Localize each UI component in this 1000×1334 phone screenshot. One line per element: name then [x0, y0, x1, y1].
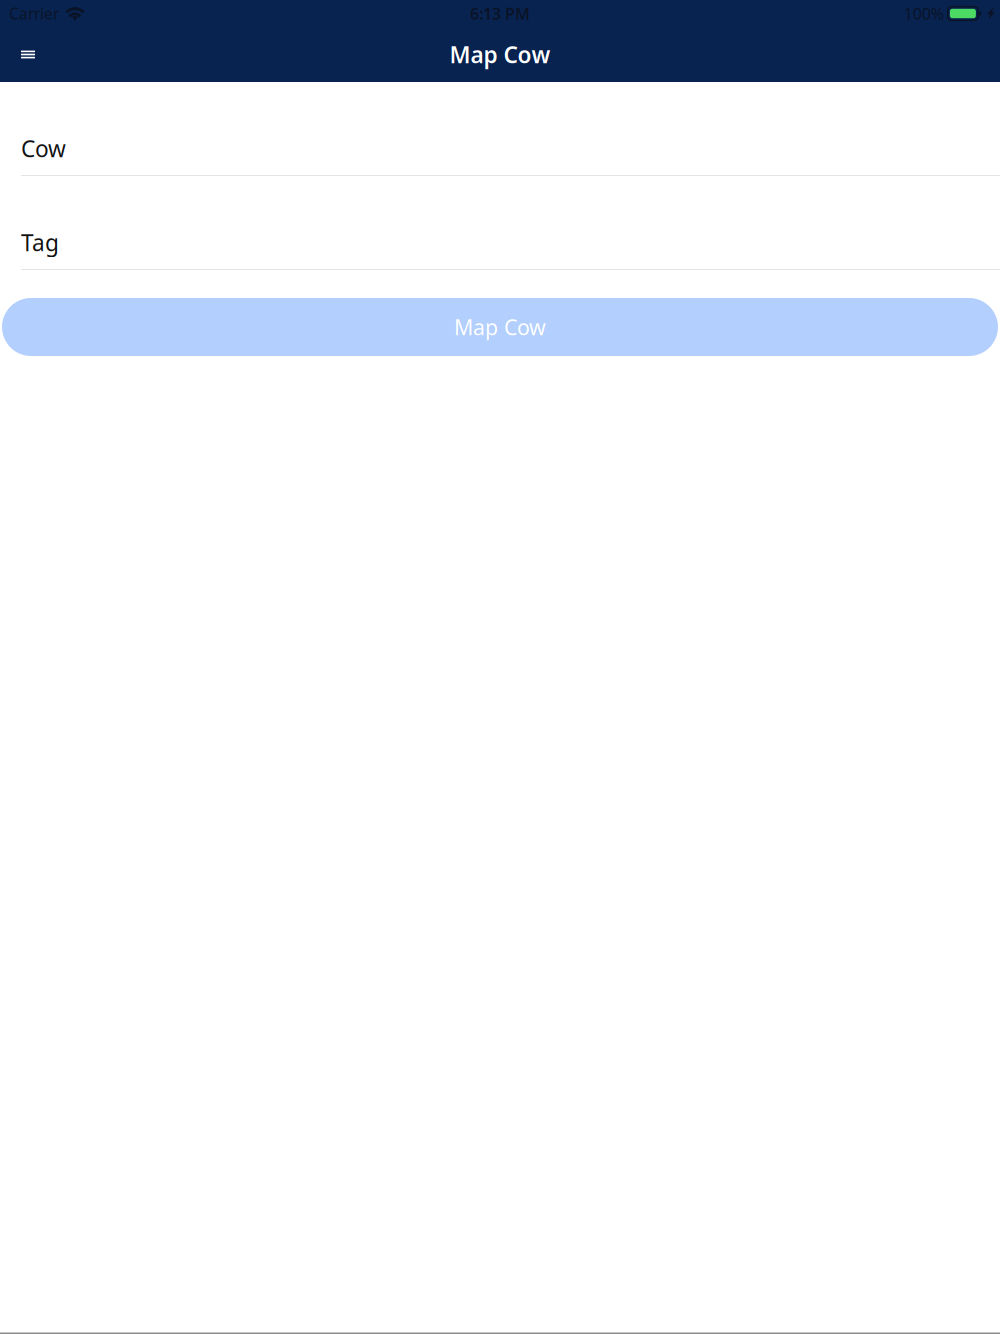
button[interactable]: Menu: [6, 32, 50, 76]
button[interactable]: Tag: [0, 176, 1000, 270]
button[interactable]: Cow: [0, 82, 1000, 176]
staticText: 100%: [904, 3, 944, 24]
button[interactable]: Map Cow: [2, 298, 998, 356]
staticText: Map Cow: [454, 312, 546, 342]
staticText: Carrier: [9, 3, 59, 24]
staticText: 6:13 PM: [470, 3, 530, 24]
staticText: Cow: [21, 133, 66, 164]
staticText: Map Cow: [449, 39, 550, 70]
staticText: Tag: [21, 227, 59, 258]
